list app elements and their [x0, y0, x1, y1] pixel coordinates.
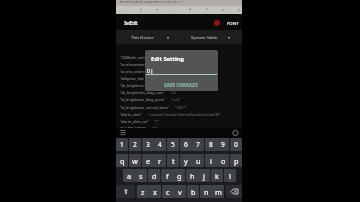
- button[interactable]: [226, 185, 242, 198]
- button[interactable]: z: [137, 185, 149, 198]
- button[interactable]: w: [129, 154, 141, 167]
- staticText: *: [189, 7, 192, 13]
- button[interactable]: This Device: [131, 30, 170, 44]
- staticText: k: [215, 171, 219, 181]
- staticText: "access_control_enabled": [120, 69, 163, 74]
- button[interactable]: 5: [167, 138, 179, 151]
- button[interactable]: p: [230, 154, 242, 167]
- button[interactable]: t: [167, 154, 179, 167]
- button[interactable]: x: [149, 185, 161, 198]
- staticText: ▾: [228, 35, 231, 40]
- button[interactable]: 1: [116, 138, 128, 151]
- staticText: "60": [169, 83, 177, 88]
- button[interactable]: r: [154, 154, 166, 167]
- staticText: "-1": [158, 55, 165, 60]
- button[interactable]: 7: [192, 138, 204, 151]
- staticText: +: [156, 7, 159, 13]
- button[interactable]: 4: [154, 138, 166, 151]
- button[interactable]: g: [173, 169, 185, 182]
- button[interactable]: v: [174, 185, 186, 198]
- staticText: z: [141, 187, 145, 197]
- button[interactable]: k: [211, 169, 223, 182]
- staticText: a: [127, 171, 132, 181]
- staticText: c: [166, 187, 170, 197]
- staticText: "la_brightness_normal_elem": [120, 105, 170, 110]
- staticText: >: [238, 7, 241, 13]
- staticText: w: [132, 156, 138, 166]
- staticText: 7: [196, 140, 200, 149]
- button[interactable]: 6: [180, 138, 192, 151]
- button[interactable]: "ALARM_STATE": [120, 126, 242, 131]
- button[interactable]: "alarm_alert_set": [120, 119, 242, 124]
- button[interactable]: "3GMode_settings": [120, 55, 242, 60]
- button[interactable]: 9: [217, 138, 229, 151]
- button[interactable]: ⇧: [116, 185, 135, 198]
- button[interactable]: SetEdit: [124, 20, 138, 26]
- staticText: 6: [184, 140, 188, 149]
- button[interactable]: y: [180, 154, 192, 167]
- staticText: ▾: [167, 35, 170, 40]
- button[interactable]: System Table: [191, 30, 231, 44]
- button[interactable]: "alarm_alert": [120, 112, 242, 117]
- staticText: "null": [171, 97, 181, 102]
- button[interactable]: e: [142, 154, 154, 167]
- button[interactable]: "sb_brightness_drag_pnt": [120, 83, 242, 88]
- button[interactable]: a: [123, 169, 135, 182]
- staticText: SetEdit: [124, 20, 138, 26]
- button[interactable]: s: [135, 169, 147, 182]
- button[interactable]: b: [187, 185, 199, 198]
- staticText: This Device: [131, 34, 154, 40]
- staticText: System Table: [191, 34, 218, 40]
- staticText: e: [146, 156, 151, 166]
- staticText: h: [190, 171, 195, 181]
- staticText: FONT: [227, 20, 239, 26]
- button[interactable]: o: [217, 154, 229, 167]
- button[interactable]: FONT: [227, 20, 239, 26]
- staticText: "7847": [175, 105, 187, 110]
- staticText: j: [203, 171, 205, 181]
- staticText: s: [139, 171, 143, 181]
- staticText: "sb_brightness_drag_pnt": [120, 83, 164, 88]
- staticText: SAVE CHANGES: [164, 82, 199, 88]
- staticText: -: [124, 7, 126, 13]
- button[interactable]: q: [116, 154, 128, 167]
- staticText: r: [158, 156, 162, 166]
- button[interactable]: u: [192, 154, 204, 167]
- button[interactable]: [214, 20, 220, 26]
- staticText: 9: [221, 140, 225, 149]
- staticText: 3: [146, 140, 150, 149]
- staticText: d: [152, 171, 157, 181]
- button[interactable]: f: [161, 169, 173, 182]
- button[interactable]: c: [162, 185, 174, 198]
- button[interactable]: j: [198, 169, 210, 182]
- button[interactable]: d: [148, 169, 160, 182]
- button[interactable]: "accelerometer_rotation": [120, 62, 242, 67]
- button[interactable]: l: [224, 169, 236, 182]
- staticText: <: [222, 7, 225, 13]
- button[interactable]: 3: [142, 138, 154, 151]
- staticText: u: [196, 156, 201, 166]
- button[interactable]: "adaptive_fast_charging": [120, 76, 242, 81]
- button[interactable]: 0: [230, 138, 242, 151]
- button[interactable]: i: [205, 154, 217, 167]
- staticText: "alarm_alert_set": [120, 119, 149, 124]
- staticText: "accelerometer_rotation": [120, 62, 163, 67]
- button[interactable]: SAVE CHANGES: [145, 78, 218, 91]
- staticText: 4: [158, 140, 162, 149]
- staticText: ⇧: [123, 188, 129, 196]
- staticText: "content://media/internal/audio/media/38…: [148, 112, 221, 117]
- staticText: i: [210, 156, 212, 166]
- button[interactable]: m: [212, 185, 224, 198]
- button[interactable]: "la_brightness_normal_elem": [120, 105, 242, 110]
- button[interactable]: 8: [205, 138, 217, 151]
- button[interactable]: n: [200, 185, 212, 198]
- button[interactable]: "sb_brightness_drag_sum": [120, 90, 242, 95]
- button[interactable]: 2: [129, 138, 141, 151]
- button[interactable]: "access_control_enabled": [120, 69, 242, 74]
- button[interactable]: "la_brightness_drag_point": [120, 97, 242, 102]
- button[interactable]: h: [186, 169, 198, 182]
- staticText: x: [153, 187, 157, 197]
- staticText: f: [166, 171, 169, 181]
